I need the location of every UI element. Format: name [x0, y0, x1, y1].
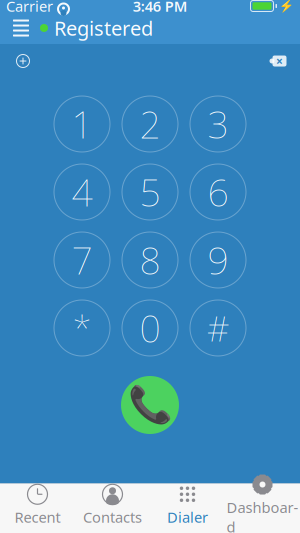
button[interactable]: 1 — [48, 90, 116, 158]
button[interactable]: Dialer — [150, 484, 225, 533]
staticText: 3:46 PM — [133, 0, 188, 16]
staticText: 📞 — [127, 384, 172, 425]
button[interactable]: * — [48, 294, 116, 362]
button[interactable]: Add contact — [4, 46, 38, 76]
staticText: 4 — [71, 167, 92, 217]
staticText: × — [276, 53, 283, 69]
button[interactable]: 0 — [116, 294, 184, 362]
staticText: 9 — [207, 235, 228, 285]
button[interactable]: Menu — [2, 16, 40, 40]
button[interactable]: # — [184, 294, 252, 362]
button[interactable]: 9 — [184, 226, 252, 294]
button[interactable]: 3 — [184, 90, 252, 158]
staticText: 0 — [139, 303, 160, 353]
staticText: Carrier — [6, 0, 53, 16]
button[interactable]: 4 — [48, 158, 116, 226]
button[interactable]: 7 — [48, 226, 116, 294]
staticText: ⚡ — [279, 0, 294, 13]
button[interactable]: 8 — [116, 226, 184, 294]
staticText: Contacts — [83, 507, 142, 527]
staticText: Registered — [54, 15, 153, 41]
staticText: Dashboard — [226, 497, 298, 533]
button[interactable]: Recent — [0, 484, 75, 533]
staticText: Dialer — [167, 507, 208, 527]
button[interactable]: 6 — [184, 158, 252, 226]
button[interactable]: 5 — [116, 158, 184, 226]
button[interactable]: 2 — [116, 90, 184, 158]
button[interactable]: Backspace — [262, 46, 296, 76]
button[interactable]: Dashboard — [225, 484, 300, 533]
staticText: 6 — [207, 167, 228, 217]
staticText: # — [207, 305, 229, 351]
button[interactable]: Contacts — [75, 484, 150, 533]
staticText: Recent — [14, 507, 60, 527]
staticText: 7 — [71, 235, 92, 285]
button[interactable]: Call — [121, 376, 179, 434]
staticText: 1 — [71, 99, 92, 149]
staticText: 5 — [139, 167, 160, 217]
staticText: 2 — [139, 99, 160, 149]
staticText: 8 — [139, 235, 160, 285]
staticText: 3 — [207, 99, 228, 149]
staticText: * — [72, 305, 91, 351]
